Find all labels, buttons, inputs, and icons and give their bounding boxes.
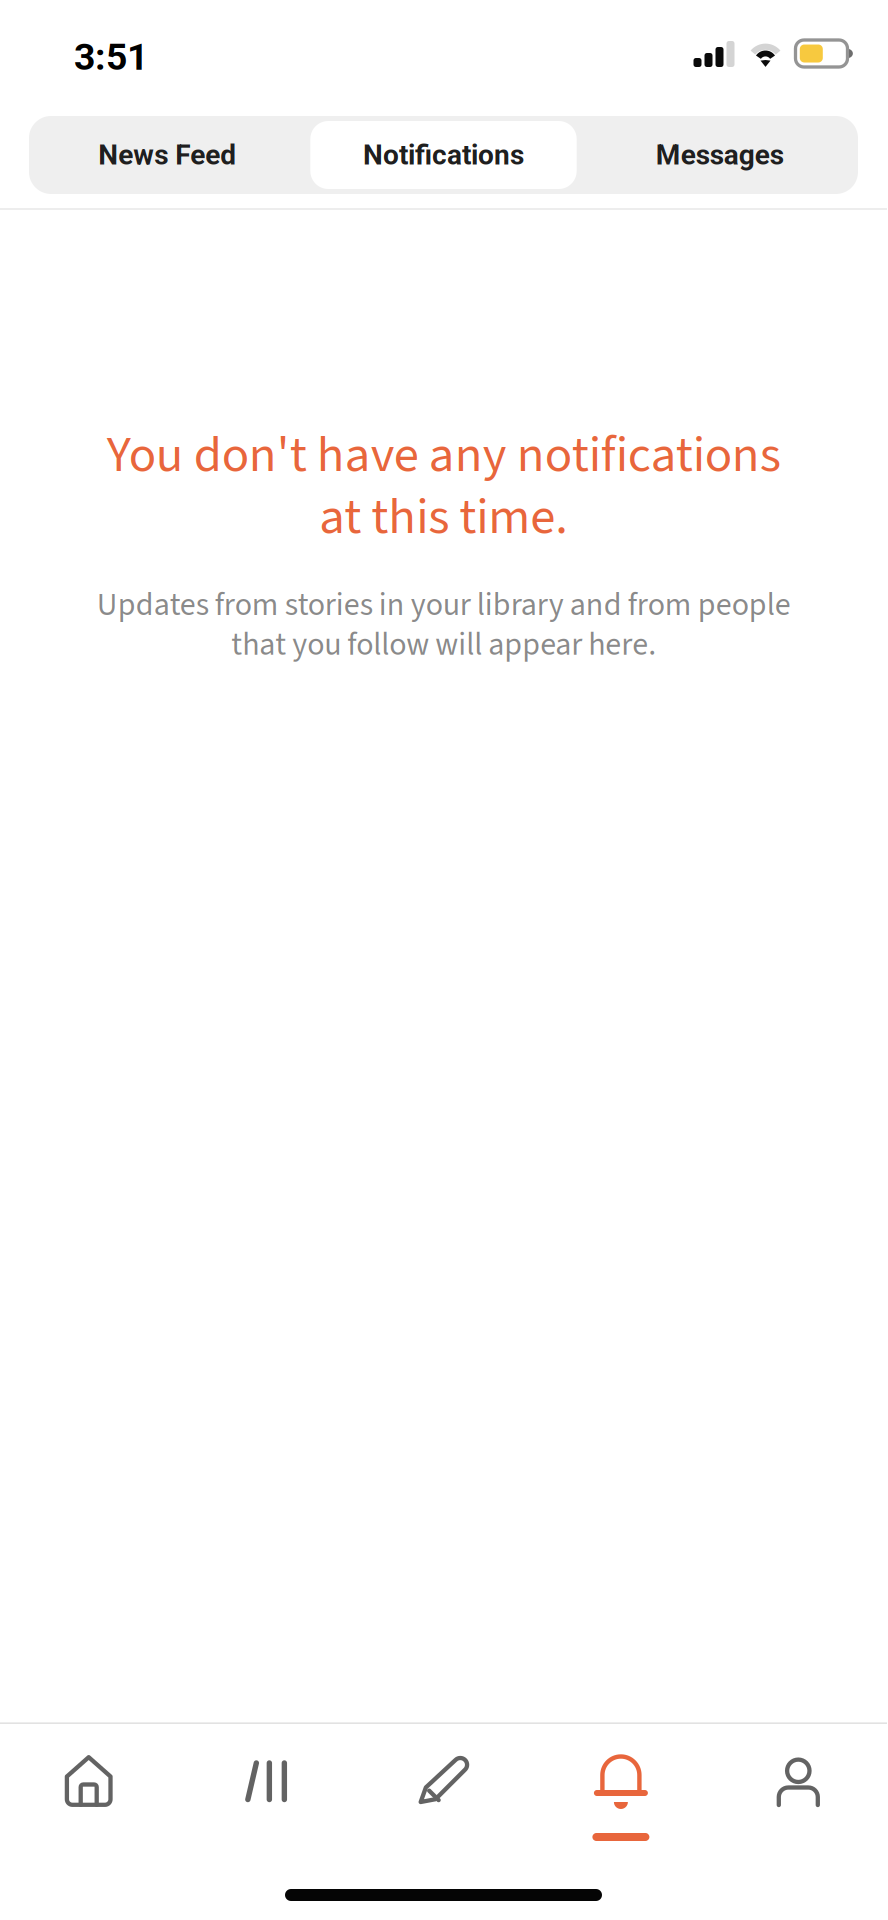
button[interactable]: Profile [710, 1724, 887, 1847]
staticText: Updates from stories in your library and… [96, 582, 790, 667]
button[interactable]: Notifications [305, 116, 582, 194]
button[interactable]: Notifications [532, 1724, 710, 1847]
button[interactable]: Write [355, 1724, 532, 1847]
staticText: 3:51 [74, 35, 148, 79]
button[interactable]: Messages [582, 116, 858, 194]
staticText: Messages [656, 139, 784, 171]
button[interactable]: Library [177, 1724, 355, 1847]
staticText: News Feed [98, 139, 236, 171]
staticText: You don't have any notifications at this… [106, 419, 780, 553]
button[interactable]: Home [0, 1724, 177, 1847]
button[interactable]: News Feed [29, 116, 305, 194]
staticText: Notifications [363, 139, 524, 171]
